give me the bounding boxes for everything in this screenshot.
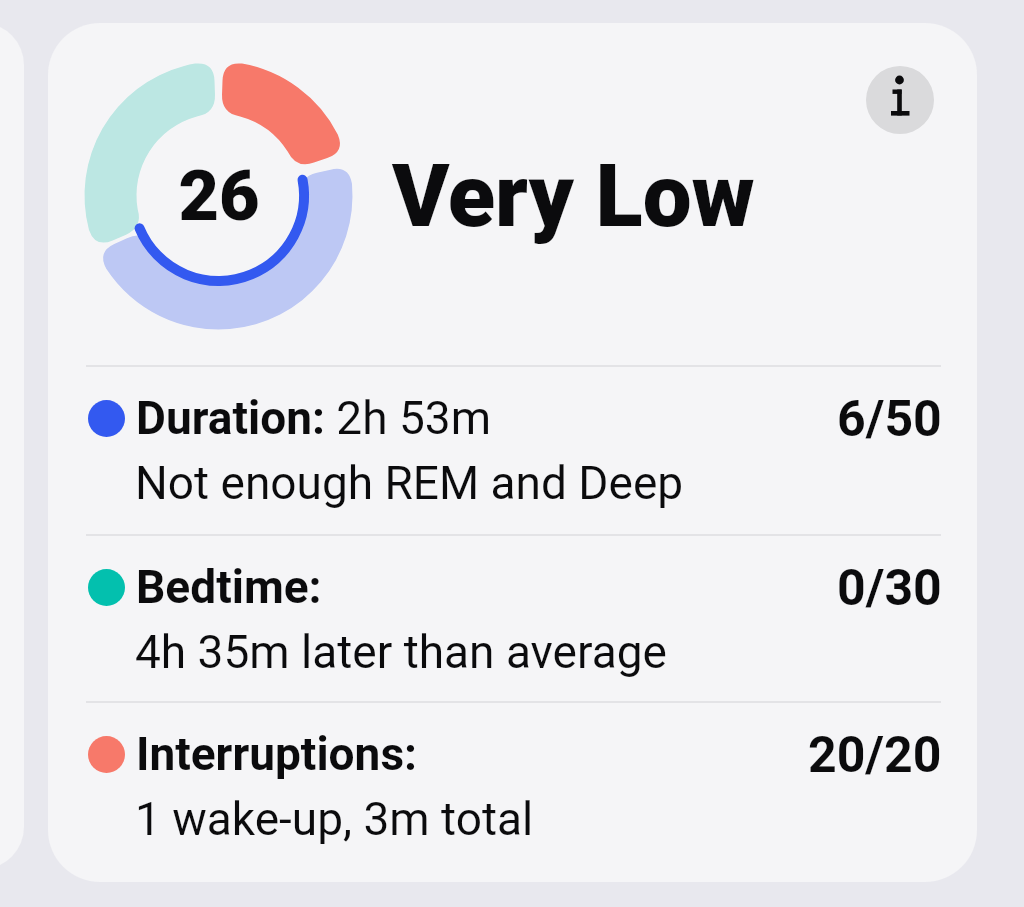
- button[interactable]: Info: [866, 66, 934, 134]
- button[interactable]: Interruptions:: [48, 701, 977, 867]
- staticText: Duration: 2h 53m: [136, 391, 492, 445]
- button[interactable]: Duration: 2h 53m: [48, 365, 977, 531]
- staticText: Interruptions:: [136, 727, 418, 781]
- staticText: 20/20: [808, 726, 942, 785]
- staticText: Not enough REM and Deep: [135, 456, 684, 510]
- staticText: Bedtime:: [136, 560, 322, 614]
- staticText: Very Low: [392, 145, 755, 247]
- staticText: 4h 35m later than average: [135, 625, 667, 679]
- staticText: 1 wake-up, 3m total: [135, 792, 534, 846]
- staticText: 6/50: [837, 390, 942, 449]
- staticText: 26: [178, 155, 260, 237]
- staticText: 0/30: [837, 559, 942, 618]
- button[interactable]: Bedtime:: [48, 534, 977, 700]
